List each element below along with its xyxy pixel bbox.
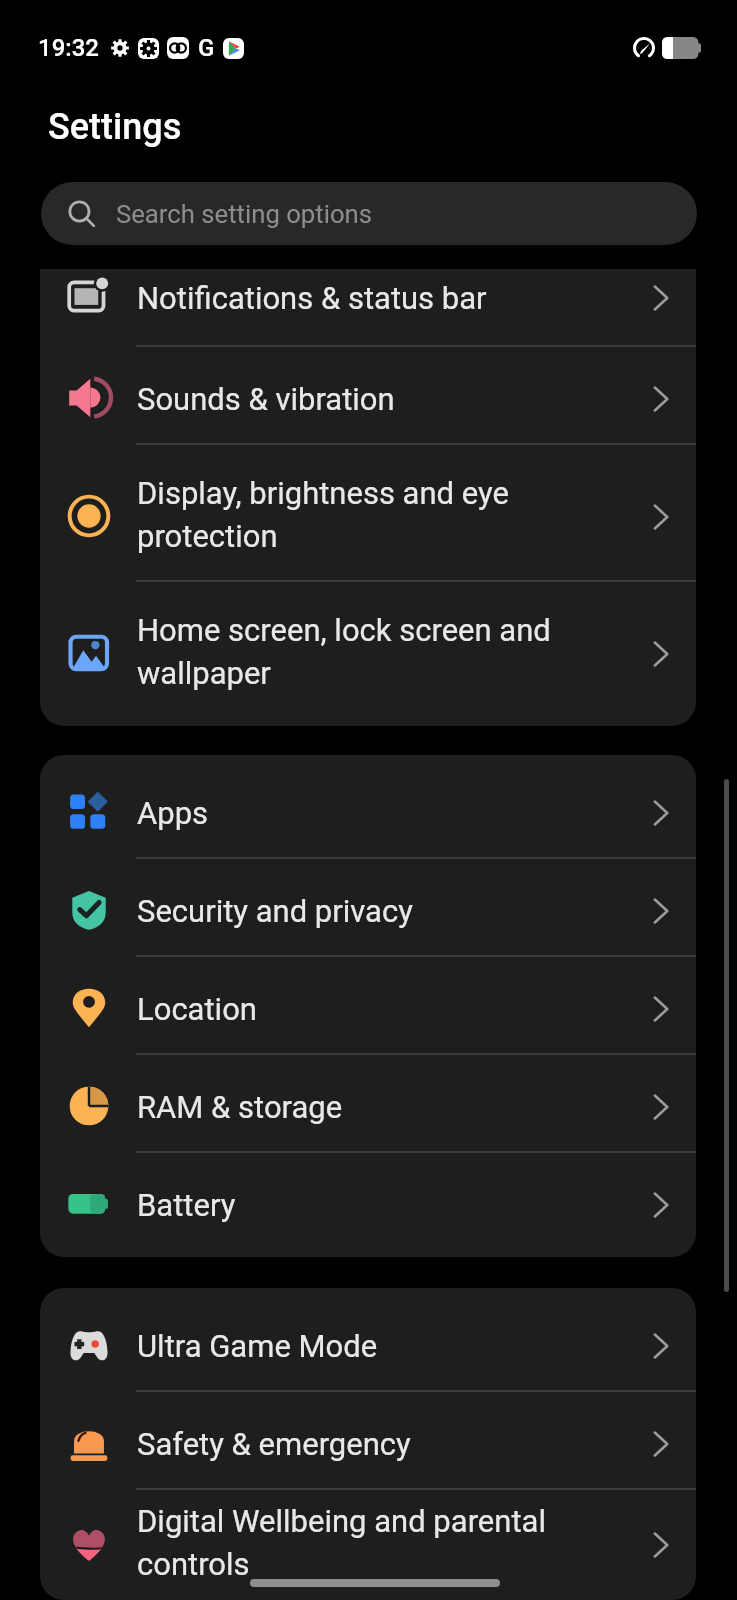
staticText: RAM & storage — [137, 1089, 343, 1125]
staticText: Battery — [137, 1187, 236, 1223]
staticText: Settings — [48, 106, 182, 148]
button[interactable]: Safety & emergency — [40, 1392, 696, 1490]
button[interactable]: Digital Wellbeing and parental controls — [40, 1490, 696, 1594]
button[interactable]: Security and privacy — [40, 859, 696, 957]
staticText: Sounds & vibration — [137, 381, 395, 417]
button[interactable]: Ultra Game Mode — [40, 1294, 696, 1392]
staticText: Search setting options — [116, 199, 373, 229]
staticText: Display, brightness and eye protection — [137, 475, 569, 555]
button[interactable]: Display, brightness and eye protection — [40, 445, 696, 582]
staticText: Security and privacy — [137, 893, 413, 929]
button[interactable]: Home screen, lock screen and wallpaper — [40, 582, 696, 720]
button[interactable]: Search setting options — [41, 182, 697, 245]
button[interactable]: Battery — [40, 1153, 696, 1251]
staticText: Notifications & status bar — [137, 280, 487, 316]
staticText: Home screen, lock screen and wallpaper — [137, 612, 569, 692]
staticText: Location — [137, 991, 257, 1027]
button[interactable]: Sounds & vibration — [40, 347, 696, 445]
button[interactable]: RAM & storage — [40, 1055, 696, 1153]
staticText: Digital Wellbeing and parental controls — [137, 1503, 569, 1583]
button[interactable]: Notifications & status bar — [40, 269, 696, 347]
staticText: G — [198, 34, 215, 62]
button[interactable]: Location — [40, 957, 696, 1055]
staticText: 19:32 — [38, 34, 99, 62]
staticText: Safety & emergency — [137, 1426, 411, 1462]
staticText: Ultra Game Mode — [137, 1328, 378, 1364]
staticText: Apps — [137, 795, 209, 831]
button[interactable]: Apps — [40, 761, 696, 859]
